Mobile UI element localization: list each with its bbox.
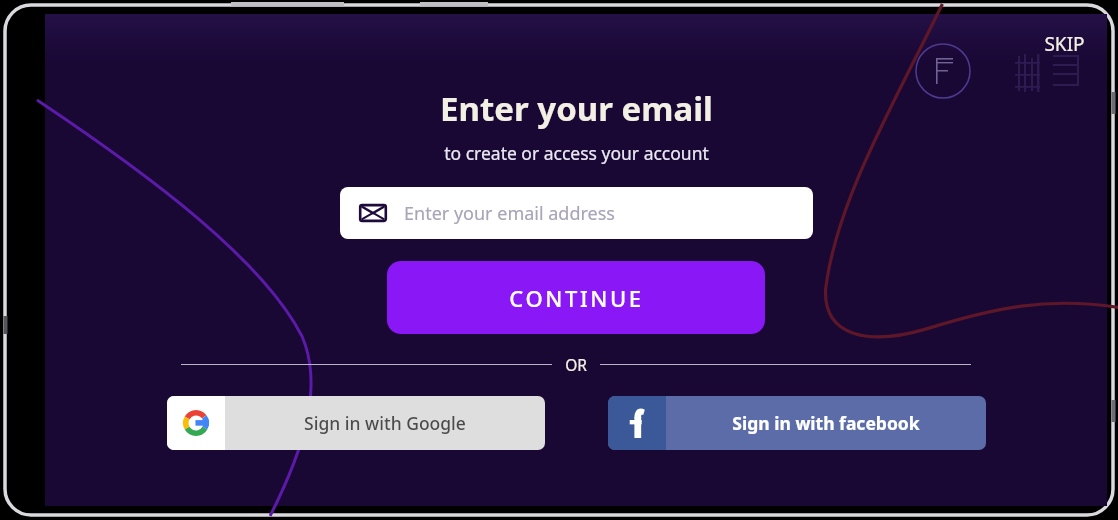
button[interactable]: Enter your email address <box>340 187 813 239</box>
staticText: Enter your email address <box>404 201 615 226</box>
staticText: OR <box>565 354 587 375</box>
button[interactable]: Sign in with Google <box>167 396 545 450</box>
staticText: Enter your email <box>440 86 713 131</box>
button[interactable]: CONTINUE <box>387 261 765 334</box>
button[interactable]: Sign in with facebook <box>608 396 986 450</box>
staticText: CONTINUE <box>509 283 644 313</box>
staticText: to create or access your account <box>444 141 709 165</box>
staticText: SKIP <box>1044 31 1085 57</box>
button[interactable]: SKIP <box>1038 28 1091 60</box>
staticText: Sign in with facebook <box>732 411 920 435</box>
staticText: Sign in with Google <box>304 411 466 435</box>
